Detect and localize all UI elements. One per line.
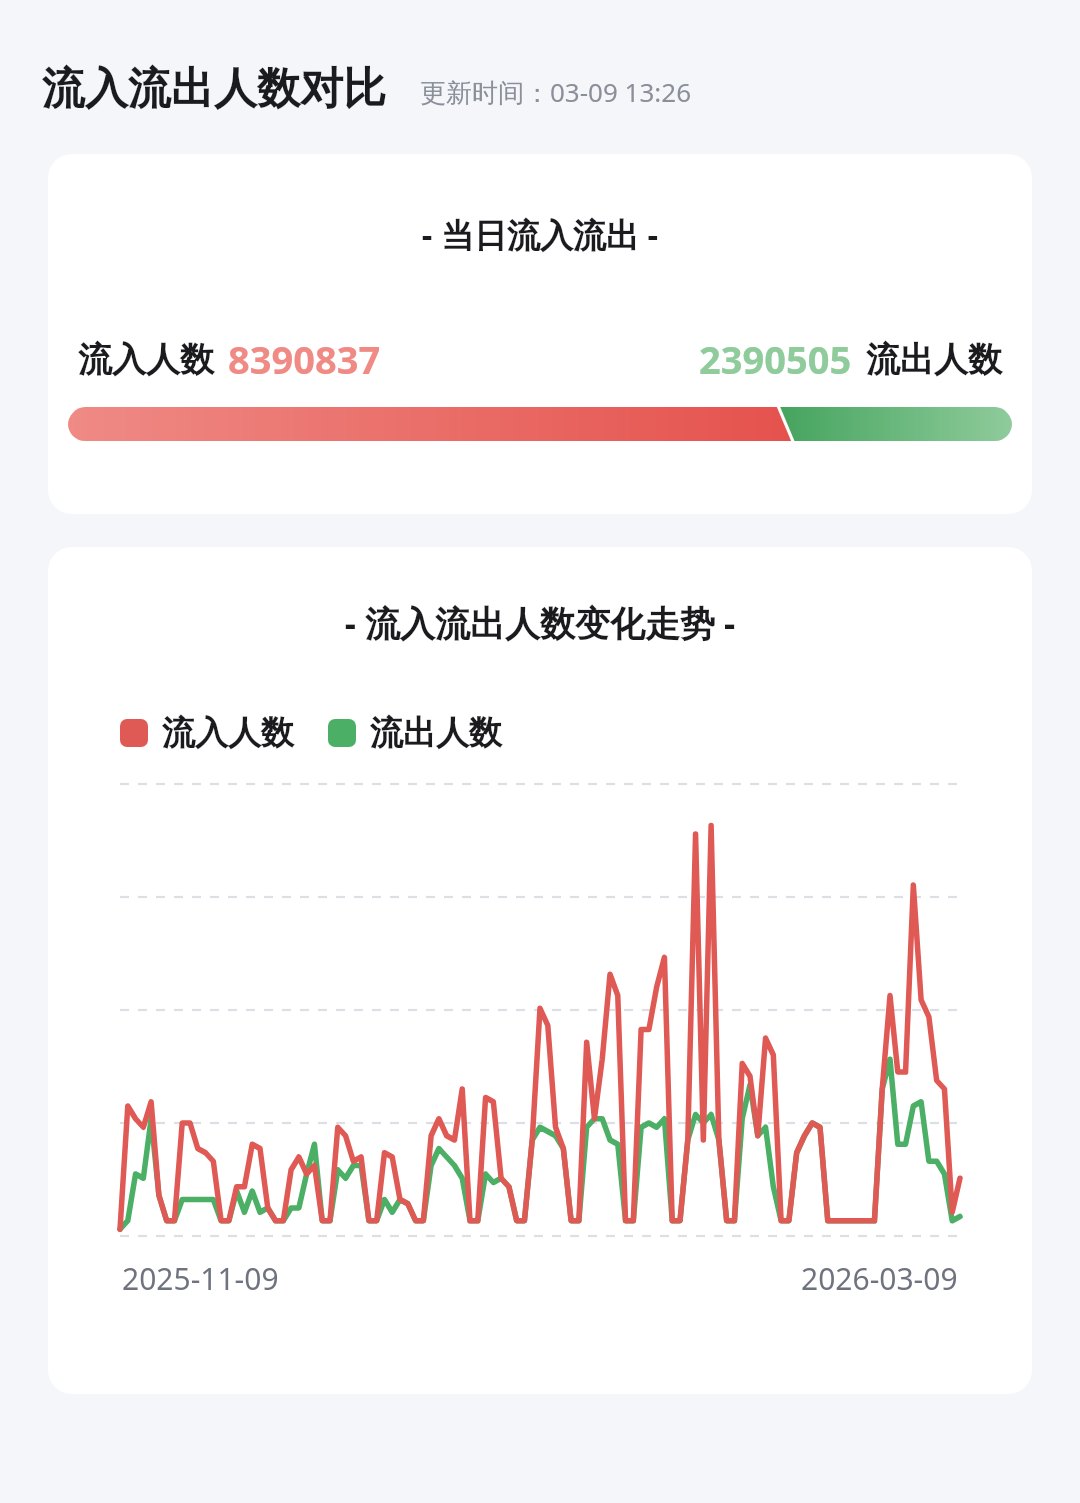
staticText: 8390837 (228, 333, 381, 385)
button[interactable]: 流出人数 (328, 712, 502, 754)
staticText: - 当日流入流出 - (48, 212, 1032, 257)
staticText: 更新时间：03-09 13:26 (420, 74, 692, 110)
other: 流入人数 (120, 719, 148, 747)
staticText: 流出人数 (370, 712, 502, 754)
staticText: - 流入流出人数变化走势 - (48, 599, 1032, 647)
staticText: 2390505 (699, 333, 852, 385)
staticText: 2026-03-09 (801, 1258, 958, 1299)
staticText: 2025-11-09 (122, 1258, 279, 1299)
button[interactable]: - 流入流出人数变化走势 - (48, 547, 1032, 1394)
other: 流出人数 (328, 719, 356, 747)
staticText: 流出人数 (866, 338, 1002, 381)
staticText: 流入流出人数对比 (42, 62, 386, 116)
button[interactable]: 流入人数 (120, 712, 294, 754)
staticText: 流入人数 (78, 338, 214, 381)
staticText: 流入人数 (162, 712, 294, 754)
button[interactable]: - 当日流入流出 - (48, 154, 1032, 514)
